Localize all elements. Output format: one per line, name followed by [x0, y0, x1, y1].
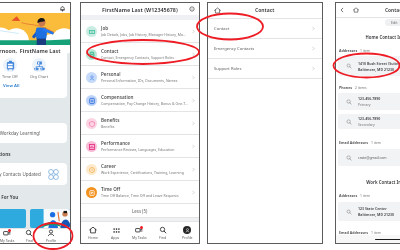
staticText: 123 State Center	[358, 206, 387, 211]
button[interactable]: Home	[81, 222, 104, 243]
staticText: Baltimore, MD 21230	[358, 212, 394, 217]
button[interactable]	[0, 209, 26, 228]
staticText: 1 item	[360, 48, 371, 53]
staticText: Apps	[111, 235, 120, 240]
button[interactable]: Settings	[189, 6, 195, 12]
staticText: crate@gmail.com	[358, 155, 387, 160]
button[interactable]: Org Chart	[24, 58, 54, 79]
staticText: Home	[88, 235, 98, 240]
button[interactable]: My Tasks	[0, 229, 18, 243]
staticText: Secondary	[358, 122, 375, 127]
staticText: Timely Content For You	[0, 194, 19, 200]
button[interactable]: Emergency Contacts Updated	[0, 163, 67, 185]
staticText: Phones	[339, 85, 353, 90]
staticText: Contact	[385, 7, 400, 14]
staticText: Job Details, Jobs, Job History, Manager …	[101, 32, 186, 37]
staticText: Benefits	[101, 124, 115, 129]
staticText: My Tasks	[132, 235, 147, 240]
staticText: 1 item	[371, 230, 382, 235]
staticText: Email Addresses	[339, 230, 369, 235]
button[interactable]: Career	[81, 158, 199, 180]
button[interactable]: crate@gmail.com	[338, 149, 400, 166]
staticText: FirstName Last (W12345678)	[102, 6, 178, 13]
button[interactable]: Time Off	[0, 58, 24, 79]
staticText: Profile	[46, 238, 57, 243]
button[interactable]: Emergency Contacts	[208, 39, 322, 58]
button[interactable]: Benefits	[81, 112, 199, 134]
staticText: Career	[101, 163, 116, 169]
staticText: Primary	[358, 102, 371, 107]
staticText: Welcome to Workday Learning!	[0, 130, 41, 136]
button[interactable]: Contact	[81, 43, 199, 65]
staticText: Emergency Contacts Updated	[0, 171, 41, 177]
button[interactable]: Personal	[81, 66, 199, 88]
button[interactable]: Contact	[208, 19, 322, 38]
button[interactable]: Job	[81, 20, 199, 42]
button[interactable]: Profile	[175, 222, 199, 243]
staticText: Profile	[182, 235, 193, 240]
staticText: 1410 Bush Street (Suite A)	[358, 61, 400, 66]
staticText: Awaiting Your Actions	[0, 151, 11, 157]
staticText: Contact	[255, 7, 275, 14]
button[interactable]: Back	[339, 7, 345, 13]
button[interactable]: Profile	[40, 229, 62, 243]
staticText: Email Addresses	[339, 140, 369, 145]
staticText: 123-456-7890	[358, 116, 381, 121]
button[interactable]: Home	[214, 7, 221, 14]
staticText: 2 items	[355, 85, 367, 90]
staticText: 123-456-7890	[358, 96, 381, 101]
button[interactable]: Apps	[104, 222, 127, 243]
staticText: 1 item	[371, 140, 382, 145]
staticText: Time Off Balance, Time Off and Leave Req…	[101, 193, 179, 198]
staticText: Edit	[391, 20, 398, 25]
button[interactable]: 123-456-7890	[338, 93, 400, 110]
staticText: Emergency Contacts	[214, 46, 255, 52]
button[interactable]: View All	[3, 83, 20, 89]
staticText: Addresses	[339, 193, 358, 198]
staticText: Personal Information, IDs, Documents, Na…	[101, 78, 178, 83]
staticText: Time Off	[2, 74, 18, 79]
button[interactable]: Find	[18, 229, 40, 243]
staticText: Compensation, Pay Change History, Bonus …	[101, 101, 188, 106]
button[interactable]: Notifications	[59, 5, 66, 12]
button[interactable]: 123-456-7890	[338, 114, 400, 129]
staticText: Benefits	[101, 117, 120, 123]
staticText: Performance	[101, 140, 131, 146]
staticText: Addresses	[339, 48, 358, 53]
staticText: Find	[26, 238, 33, 243]
staticText: Baltimore, MD 21230	[358, 67, 394, 72]
staticText: Contact	[214, 26, 230, 32]
button[interactable]: Find	[151, 222, 175, 243]
staticText: Find	[159, 235, 167, 240]
staticText: Less (5)	[132, 208, 148, 214]
staticText: Contact	[101, 48, 119, 54]
staticText: Home Contact Information	[336, 34, 400, 40]
button[interactable]: Compensation	[81, 89, 199, 111]
staticText: Personal	[101, 71, 121, 77]
staticText: Job	[101, 25, 109, 31]
button[interactable]: Home	[353, 7, 359, 13]
staticText: Work Experience, Certifications, Trainin…	[101, 170, 184, 175]
staticText: My Tasks	[0, 238, 15, 243]
staticText: Good afternoon, FirstName Last	[0, 47, 61, 54]
button[interactable]: Support Roles	[208, 59, 322, 78]
button[interactable]: Welcome to Workday Learning!	[0, 123, 67, 143]
staticText: Compensation	[101, 94, 134, 100]
staticText: Contact, Emergency Contacts, Support Rol…	[101, 55, 174, 60]
button[interactable]: Time Off	[81, 181, 199, 203]
button[interactable]: My Tasks	[127, 222, 151, 243]
button[interactable]: 123 State Center	[338, 202, 400, 221]
staticText: Time Off	[101, 186, 121, 192]
staticText: 1 item	[360, 193, 371, 198]
staticText: Support Roles	[214, 66, 242, 72]
button[interactable]: 1410 Bush Street (Suite A)	[338, 56, 400, 76]
staticText: Work Contact Information	[336, 179, 400, 185]
button[interactable]: Edit	[385, 19, 400, 26]
button[interactable]: Less (5)	[81, 204, 199, 217]
staticText: Org Chart	[30, 74, 49, 79]
staticText: Performance Reviews, Languages, Educatio…	[101, 147, 175, 152]
button[interactable]	[30, 209, 70, 228]
button[interactable]: Performance	[81, 135, 199, 157]
